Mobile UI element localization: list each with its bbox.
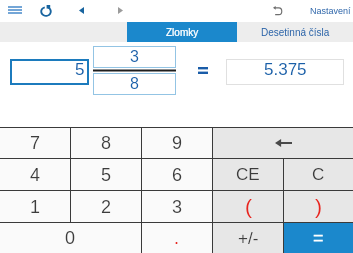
button[interactable]: 5.375 <box>226 59 344 85</box>
staticText: 3 <box>130 48 139 66</box>
staticText: 8 <box>101 133 112 153</box>
button[interactable]: . <box>142 223 212 253</box>
button[interactable]: Previous <box>71 0 91 21</box>
button[interactable]: ) <box>284 191 353 222</box>
staticText: 8 <box>130 75 139 93</box>
staticText: Zlomky <box>166 27 199 38</box>
button[interactable]: Menu <box>2 0 27 20</box>
button[interactable]: 4 <box>0 159 70 190</box>
button[interactable]: +/- <box>213 223 283 253</box>
button[interactable]: Zlomky <box>127 22 237 42</box>
button[interactable]: Backspace <box>213 128 353 158</box>
button[interactable]: Desetinná čísla <box>238 22 353 42</box>
staticText: 5 <box>75 60 85 79</box>
button[interactable]: 6 <box>142 159 212 190</box>
staticText: = <box>313 228 324 248</box>
staticText: 1 <box>30 197 41 217</box>
button[interactable]: Refresh <box>35 0 56 22</box>
staticText: ( <box>245 195 252 218</box>
button[interactable]: 3 <box>93 46 176 68</box>
staticText: . <box>174 228 180 248</box>
staticText: +/- <box>238 229 259 248</box>
staticText: 4 <box>30 165 41 185</box>
button[interactable]: C <box>284 159 353 190</box>
staticText: CE <box>236 165 260 184</box>
button[interactable]: 8 <box>93 73 176 95</box>
staticText: Nastavení <box>310 6 351 16</box>
staticText: 6 <box>172 165 183 185</box>
button[interactable]: 5 <box>10 59 89 85</box>
button[interactable]: Next <box>110 0 130 21</box>
button[interactable]: CE <box>213 159 283 190</box>
staticText: Desetinná čísla <box>261 27 330 38</box>
staticText: 5 <box>101 165 112 185</box>
staticText: C <box>312 165 325 184</box>
button[interactable]: 5 <box>71 159 141 190</box>
button[interactable]: 8 <box>71 128 141 158</box>
staticText: 3 <box>172 197 183 217</box>
button[interactable]: ( <box>213 191 283 222</box>
staticText: 9 <box>172 133 183 153</box>
staticText: 0 <box>65 228 76 248</box>
button[interactable]: 1 <box>0 191 70 222</box>
staticText: 2 <box>101 197 112 217</box>
button[interactable]: = <box>284 223 353 253</box>
button[interactable]: 7 <box>0 128 70 158</box>
button[interactable]: 3 <box>142 191 212 222</box>
button[interactable]: 9 <box>142 128 212 158</box>
button[interactable]: Nastavení <box>310 0 351 22</box>
button[interactable]: 2 <box>71 191 141 222</box>
staticText: ) <box>315 195 322 218</box>
staticText: 7 <box>30 133 41 153</box>
staticText: 5.375 <box>264 60 307 79</box>
button[interactable]: Undo <box>266 0 288 22</box>
button[interactable]: 0 <box>0 223 141 253</box>
